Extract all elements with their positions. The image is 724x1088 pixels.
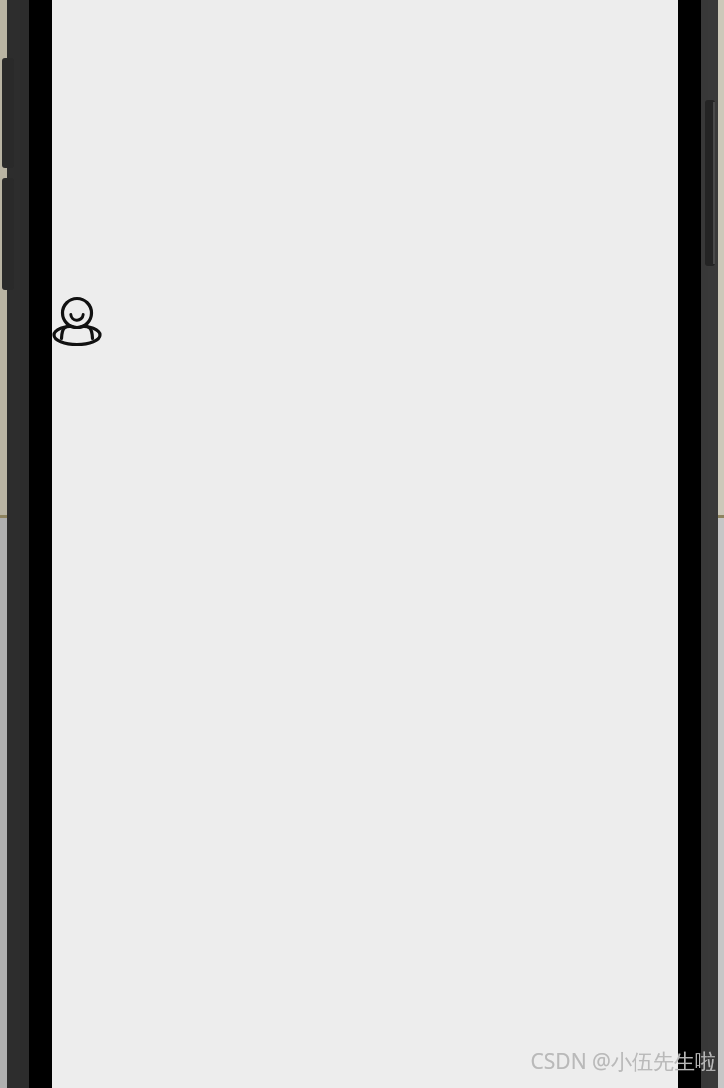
staticText: CSDN @小伍先生啦 — [530, 1047, 716, 1076]
button[interactable]: Location placeholder image — [50, 294, 104, 348]
